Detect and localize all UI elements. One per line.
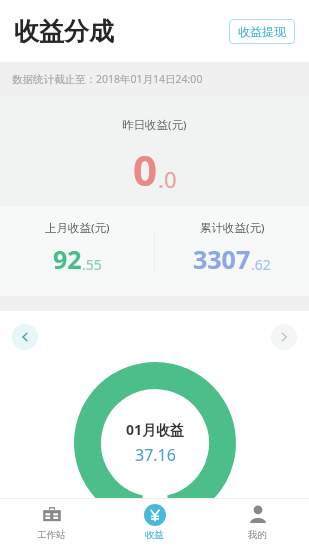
button[interactable]: 收益 <box>103 498 206 550</box>
staticText: 累计收益(元) <box>200 220 265 236</box>
staticText: .62 <box>251 255 271 274</box>
button[interactable]: 工作站 <box>0 498 103 550</box>
button[interactable]: 收益提现 <box>229 19 295 44</box>
button[interactable]: 我的 <box>206 498 309 550</box>
staticText: 37.16 <box>135 444 176 466</box>
staticText: 上月收益(元) <box>45 220 110 236</box>
staticText: 92 <box>53 242 82 276</box>
staticText: 昨日收益(元) <box>122 117 187 133</box>
staticText: .55 <box>82 255 102 274</box>
staticText: 01月收益 <box>126 420 185 439</box>
staticText: 收益 <box>145 529 164 541</box>
staticText: .0 <box>158 164 177 194</box>
staticText: 数据统计截止至：2018年01月14日24:00 <box>12 72 203 86</box>
staticText: 收益分成 <box>14 16 114 47</box>
staticText: 我的 <box>248 529 267 541</box>
staticText: 收益提现 <box>238 24 286 39</box>
staticText: 3307 <box>193 242 251 276</box>
staticText: 工作站 <box>37 529 66 541</box>
button[interactable]: Previous month <box>12 324 38 350</box>
button[interactable]: Next month <box>271 324 297 350</box>
staticText: 0 <box>133 141 158 198</box>
button[interactable]: 上月收益(元) <box>0 206 154 296</box>
button[interactable]: 累计收益(元) <box>155 206 309 296</box>
